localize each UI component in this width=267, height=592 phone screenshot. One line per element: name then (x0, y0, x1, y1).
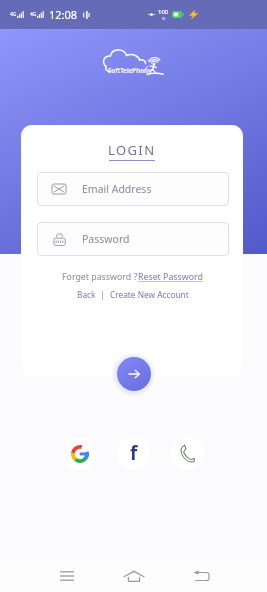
button[interactable]: Back (185, 561, 215, 591)
button[interactable]: Home (119, 561, 149, 591)
staticText: 12:08 (49, 7, 78, 22)
staticText: LOGIN (108, 141, 156, 159)
button[interactable]: Sign in with Phone (171, 437, 204, 470)
button[interactable]: Create New Account (110, 289, 189, 300)
button[interactable]: Back (77, 289, 96, 300)
button[interactable]: Password (37, 222, 229, 256)
staticText: 4G (30, 11, 37, 18)
button[interactable]: Sign in with Google (63, 437, 96, 470)
staticText: SoftTelePhony (108, 66, 152, 75)
button[interactable]: Sign in with Facebook (117, 437, 150, 470)
staticText: 4G (10, 11, 17, 18)
staticText: 100 (158, 8, 169, 16)
staticText: Forget password ? (62, 271, 138, 283)
staticText: | (96, 289, 110, 300)
staticText: f (130, 440, 138, 466)
button[interactable]: Sign in (117, 357, 151, 391)
staticText: % (162, 16, 166, 21)
button[interactable]: Recent apps (52, 561, 82, 591)
staticText: Password (82, 232, 130, 246)
staticText: Email Address (82, 182, 152, 196)
button[interactable]: Reset Password (138, 271, 203, 283)
button[interactable]: Email Address (37, 172, 229, 206)
